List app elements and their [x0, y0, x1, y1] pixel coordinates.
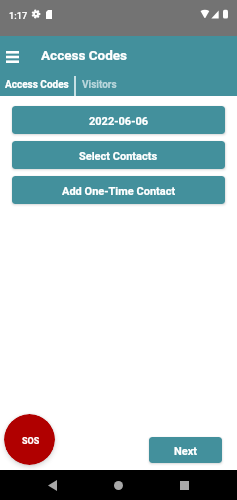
staticText: Visitors: [82, 79, 117, 91]
staticText: SOS: [22, 436, 40, 447]
staticText: Access Codes: [5, 79, 69, 91]
other: Home: [114, 481, 123, 490]
staticText: Next: [174, 445, 198, 458]
button[interactable]: Open navigation menu: [0, 36, 25, 64]
other: Back: [48, 480, 57, 491]
button[interactable]: Access Codes: [0, 70, 74, 96]
button[interactable]: SOS: [4, 414, 55, 465]
staticText: Select Contacts: [79, 150, 158, 163]
button[interactable]: Add One-Time Contact: [12, 176, 225, 204]
staticText: Add One-Time Contact: [62, 185, 176, 198]
button[interactable]: Next: [149, 437, 222, 463]
button[interactable]: 2022-06-06: [12, 106, 225, 134]
button[interactable]: Visitors: [76, 70, 152, 96]
staticText: 2022-06-06: [89, 115, 149, 128]
staticText: 1:17: [9, 10, 28, 21]
button[interactable]: Select Contacts: [12, 141, 225, 169]
staticText: Access Codes: [41, 47, 128, 63]
